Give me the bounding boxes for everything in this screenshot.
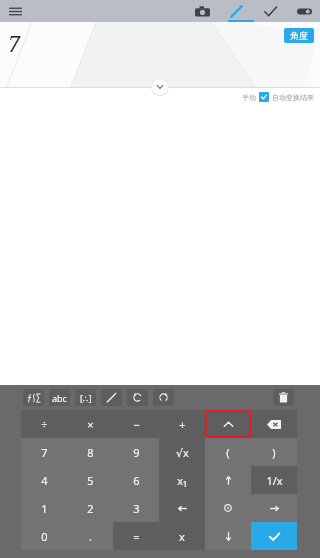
button[interactable]: Confirm: [260, 1, 280, 21]
button[interactable]: ): [251, 438, 297, 466]
button[interactable]: 5: [67, 466, 113, 494]
button[interactable]: Right: [251, 494, 297, 522]
button[interactable]: 角度: [284, 28, 314, 43]
button[interactable]: ÷: [21, 410, 67, 438]
button[interactable]: ×: [67, 410, 113, 438]
button[interactable]: 7: [21, 438, 67, 466]
staticText: −: [133, 417, 140, 432]
staticText: 3: [133, 501, 140, 516]
staticText: 4: [41, 473, 48, 488]
staticText: 6: [133, 473, 140, 488]
button[interactable]: Auto convert: [259, 92, 269, 102]
staticText: [∴]: [80, 392, 92, 404]
button[interactable]: Cursor: [205, 494, 251, 522]
button[interactable]: 4: [21, 466, 67, 494]
button[interactable]: +: [159, 410, 205, 438]
button[interactable]: 9: [113, 438, 159, 466]
button[interactable]: Left: [159, 494, 205, 522]
button[interactable]: Menu: [4, 0, 26, 22]
staticText: ÷: [41, 417, 48, 432]
staticText: √x: [176, 445, 189, 460]
button[interactable]: −: [113, 410, 159, 438]
button[interactable]: =: [113, 522, 159, 550]
button[interactable]: Matrix: [75, 389, 96, 406]
staticText: =: [133, 529, 140, 544]
staticText: ×: [87, 417, 94, 432]
button[interactable]: ABC: [49, 389, 70, 406]
button[interactable]: Power: [207, 412, 249, 436]
button[interactable]: 8: [67, 438, 113, 466]
button[interactable]: 2: [67, 494, 113, 522]
staticText: 9: [133, 445, 140, 460]
button[interactable]: x₁: [159, 466, 205, 494]
staticText: +: [179, 417, 186, 432]
staticText: 角度: [290, 30, 308, 41]
staticText: 1/x: [266, 473, 283, 488]
staticText: 7: [8, 28, 21, 58]
button[interactable]: Backspace: [251, 410, 297, 438]
staticText: 1: [41, 501, 48, 516]
button[interactable]: 6: [113, 466, 159, 494]
button[interactable]: x: [159, 522, 205, 550]
staticText: 2: [87, 501, 94, 516]
button[interactable]: Down: [205, 522, 251, 550]
button[interactable]: .: [67, 522, 113, 550]
button[interactable]: Up: [205, 466, 251, 494]
button[interactable]: Expand: [151, 78, 169, 96]
staticText: .: [89, 529, 92, 544]
staticText: (: [226, 445, 230, 460]
button[interactable]: Scribble: [101, 389, 122, 406]
button[interactable]: 1: [21, 494, 67, 522]
button[interactable]: Redo: [153, 389, 174, 406]
staticText: x: [179, 529, 185, 544]
button[interactable]: Delete all: [273, 389, 294, 406]
button[interactable]: √x: [159, 438, 205, 466]
staticText: 手动: [242, 93, 256, 102]
button[interactable]: Functions: [23, 389, 44, 406]
button[interactable]: 1/x: [251, 466, 297, 494]
staticText: 0: [41, 529, 48, 544]
button[interactable]: 3: [113, 494, 159, 522]
staticText: 自动变换结果: [272, 93, 314, 102]
button[interactable]: Eraser: [294, 1, 314, 21]
staticText: 7: [41, 445, 48, 460]
button[interactable]: Camera: [192, 1, 212, 21]
staticText: abc: [52, 392, 67, 404]
button[interactable]: Undo: [127, 389, 148, 406]
staticText: 8: [87, 445, 94, 460]
staticText: 5: [87, 473, 94, 488]
staticText: ): [272, 445, 276, 460]
button[interactable]: Draw: [226, 1, 246, 21]
button[interactable]: (: [205, 438, 251, 466]
staticText: x₁: [177, 473, 187, 488]
button[interactable]: Enter: [251, 522, 297, 550]
button[interactable]: 0: [21, 522, 67, 550]
